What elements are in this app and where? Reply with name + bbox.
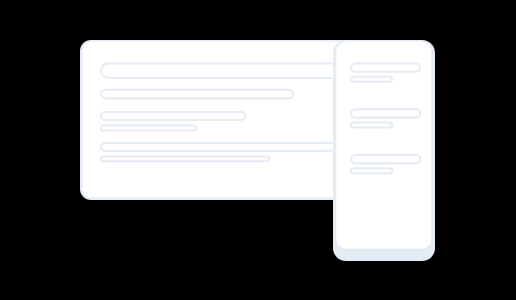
button[interactable]: Tablet layout preview [80, 40, 355, 200]
button[interactable]: Phone layout preview [333, 40, 435, 261]
